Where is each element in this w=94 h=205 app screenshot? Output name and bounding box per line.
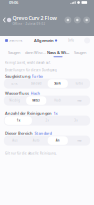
staticText: Standard	[31, 82, 42, 85]
button[interactable]: 1x	[4, 116, 33, 126]
staticText: Saugleistung	[5, 73, 30, 79]
staticText: Niedrig	[9, 99, 20, 102]
staticText: 1x	[17, 119, 20, 122]
staticText: 2x	[45, 119, 48, 122]
staticText: Info	[68, 39, 74, 42]
button[interactable]: More options	[83, 17, 90, 23]
button[interactable]: Max	[69, 136, 90, 146]
staticText: Einstellungen für diesen Durchgang	[5, 68, 57, 72]
staticText: Standard	[34, 130, 51, 136]
staticText: Saugen	[74, 50, 86, 55]
staticText: Turbo	[31, 73, 42, 79]
button[interactable]: Info	[67, 37, 75, 44]
staticText: Nass & Wisch	[47, 50, 69, 55]
staticText: Gilt nur für die aktuelle Reinigung.	[5, 152, 57, 155]
staticText: Anzahl der Reinigungen	[5, 110, 52, 116]
staticText: Mittel	[32, 99, 40, 102]
staticText: 09:06	[9, 0, 18, 5]
button[interactable]: Aus	[4, 136, 25, 146]
button[interactable]: Share	[74, 17, 81, 23]
button[interactable]: SmartHome	[4, 37, 24, 44]
staticText: Saugen	[8, 50, 20, 55]
button[interactable]: Turbo	[69, 79, 90, 89]
staticText: Max	[77, 99, 81, 102]
staticText: Allgemein	[34, 38, 54, 43]
button[interactable]: Device info	[64, 17, 71, 23]
staticText: Qrevo Curv 2 Flow	[12, 14, 56, 21]
staticText: Turbo	[75, 82, 83, 85]
staticText: 1x	[53, 110, 57, 116]
staticText: Max	[77, 139, 81, 142]
button[interactable]: Mittel	[25, 96, 47, 106]
staticText: Reinigt zuerst, wischt danach auf.	[5, 61, 51, 64]
staticText: Dieser Bereich	[5, 130, 33, 136]
button[interactable]: Standard	[25, 79, 47, 89]
button[interactable]: Leise	[4, 79, 25, 89]
button[interactable]: Saugen	[3, 50, 25, 57]
staticText: SmartHome	[9, 39, 23, 42]
staticText: dann Wischen	[25, 50, 47, 55]
button[interactable]: Max	[69, 96, 90, 106]
button[interactable]: Niedrig	[4, 96, 25, 106]
staticText: Hoch	[30, 90, 40, 96]
staticText: 3x	[74, 119, 77, 122]
button[interactable]: Back	[2, 13, 7, 26]
button[interactable]: Allgemein	[33, 36, 58, 45]
button[interactable]: Saugen	[69, 50, 91, 57]
staticText: Hoch	[54, 99, 61, 102]
staticText: Auto	[33, 139, 40, 142]
staticText: Wasserfluss	[5, 90, 29, 96]
staticText: Stark	[54, 82, 61, 85]
button[interactable]: dann Wischen	[25, 50, 47, 57]
button[interactable]: Auto	[25, 136, 47, 146]
staticText: Leise	[11, 82, 18, 85]
button[interactable]: Settings	[84, 37, 90, 43]
button[interactable]: Stark	[47, 79, 69, 89]
button[interactable]: Nass & Wisch	[47, 50, 69, 57]
staticText: An	[56, 139, 60, 142]
button[interactable]: Hoch	[47, 96, 69, 106]
staticText: Offline · Zuletzt 09:02	[12, 22, 45, 26]
button[interactable]: An	[47, 136, 69, 146]
staticText: Aus	[12, 139, 17, 142]
